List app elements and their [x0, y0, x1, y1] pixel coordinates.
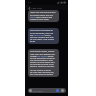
staticText: Message — [33, 89, 43, 92]
other: Send — [56, 89, 59, 92]
button[interactable]: Back — [27, 6, 31, 10]
button[interactable]: That worked nicely, thanks. Next open th… — [28, 49, 59, 77]
button[interactable]: Hello! Can you help me with my project s… — [28, 10, 59, 22]
staticText: That worked nicely, thanks. Next open th… — [30, 50, 55, 76]
staticText: New chat — [31, 6, 42, 9]
staticText: Sure thing. First install all of the pac… — [30, 29, 54, 43]
staticText: Hello! Can you help me with my project s… — [30, 11, 56, 21]
button[interactable]: Message — [28, 88, 66, 93]
staticText: 9:41 — [28, 1, 33, 4]
button[interactable]: Sure thing. First install all of the pac… — [28, 28, 59, 44]
